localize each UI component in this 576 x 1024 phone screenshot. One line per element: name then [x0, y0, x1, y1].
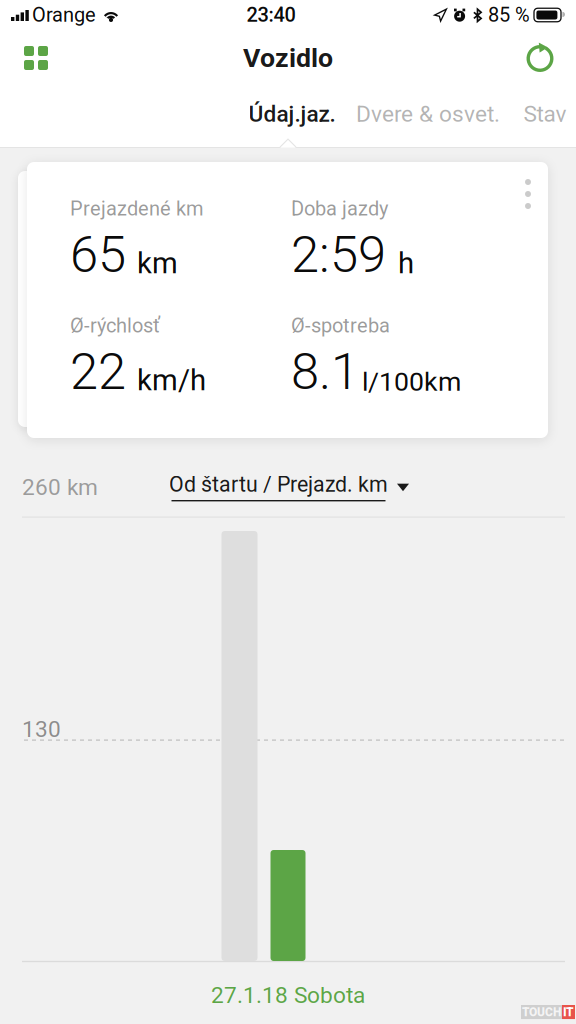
button[interactable]: Od štartu / Prejazd. km — [169, 472, 409, 501]
staticText: Orange — [32, 3, 96, 27]
staticText: Dvere & osvet. — [356, 101, 500, 127]
staticText: Od štartu / Prejazd. km — [169, 472, 388, 497]
button[interactable]: Menu — [11, 32, 61, 84]
button[interactable]: Stav — [519, 92, 571, 136]
staticText: 65 — [70, 225, 126, 284]
staticText: h — [398, 246, 414, 280]
button[interactable]: Údaj.jaz. — [247, 92, 337, 136]
staticText: 27.1.18 Sobota — [211, 982, 365, 1009]
staticText: km/h — [137, 363, 206, 397]
staticText: 22 — [70, 342, 126, 401]
staticText: 260 km — [22, 474, 98, 501]
staticText: Ø-spotreba — [291, 314, 390, 337]
staticText: 85 % — [488, 3, 530, 27]
staticText: IT — [563, 1005, 574, 1019]
staticText: Prejazdené km — [70, 197, 204, 220]
staticText: Stav — [523, 101, 566, 127]
staticText: Doba jazdy — [291, 197, 388, 220]
staticText: 130 — [22, 716, 61, 743]
staticText: km — [137, 246, 178, 280]
button[interactable]: More options — [505, 170, 551, 218]
staticText: 2:59 — [291, 225, 386, 284]
staticText: Vozidlo — [243, 42, 333, 74]
staticText: 23:40 — [246, 3, 295, 27]
staticText: 8.1 — [291, 342, 359, 401]
staticText: TOUCH — [522, 1005, 561, 1019]
button[interactable]: Refresh — [515, 32, 565, 84]
staticText: Údaj.jaz. — [248, 101, 335, 127]
staticText: Ø-rýchlosť — [70, 314, 160, 337]
staticText: l/100km — [362, 366, 461, 397]
button[interactable]: Dvere & osvet. — [357, 92, 499, 136]
